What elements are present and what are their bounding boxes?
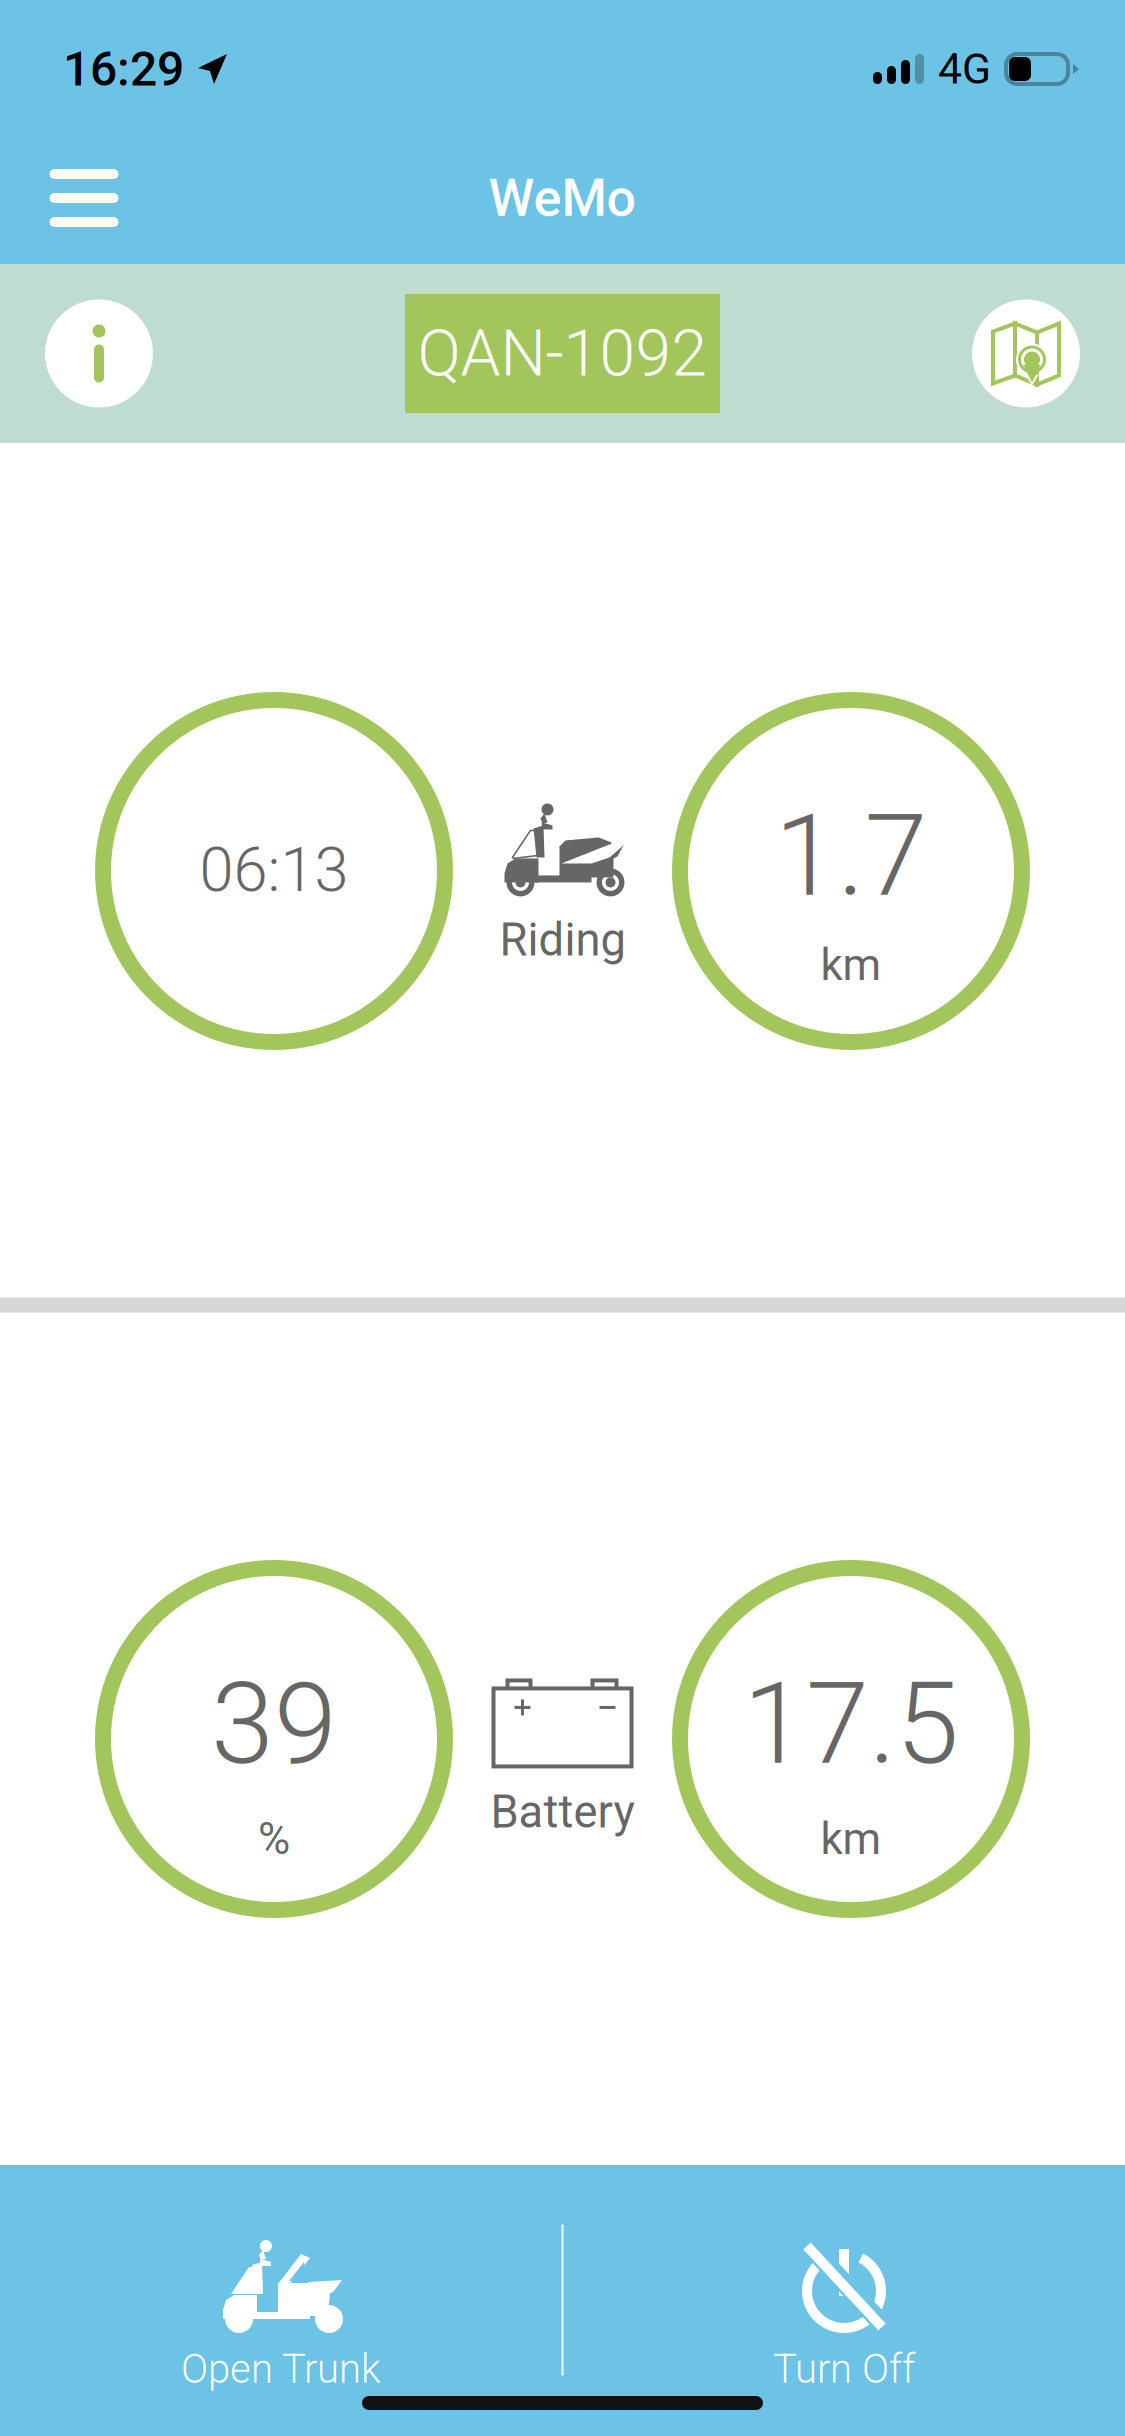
staticText: Riding xyxy=(499,913,625,966)
button[interactable]: Menu xyxy=(28,143,140,253)
staticText: Turn Off xyxy=(773,2346,915,2392)
staticText: WeMo xyxy=(488,167,636,228)
button[interactable]: Open Trunk xyxy=(31,2170,531,2400)
staticText: 1.7 xyxy=(774,790,927,922)
staticText: Battery xyxy=(490,1785,634,1838)
staticText: % xyxy=(258,1813,290,1865)
staticText: km xyxy=(820,939,881,991)
staticText: 17.5 xyxy=(743,1658,959,1790)
staticText: km xyxy=(820,1813,881,1865)
staticText: Open Trunk xyxy=(181,2346,381,2392)
staticText: QAN-1092 xyxy=(417,316,707,391)
staticText: 16:29 xyxy=(63,41,184,97)
button[interactable]: Turn Off xyxy=(594,2170,1094,2400)
staticText: 39 xyxy=(211,1658,337,1790)
button[interactable]: Information xyxy=(45,299,153,407)
staticText: 06:13 xyxy=(199,834,348,906)
button[interactable]: Map xyxy=(972,299,1080,407)
staticText: 4G xyxy=(938,44,991,94)
